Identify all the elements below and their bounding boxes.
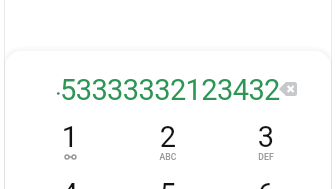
button[interactable]: 3 (217, 126, 315, 183)
button[interactable]: 5 (119, 183, 217, 189)
staticText: 6 (217, 177, 315, 189)
button[interactable]: 2 (119, 126, 217, 183)
staticText: DEF (217, 152, 315, 162)
staticText: 2 (119, 120, 217, 154)
staticText: 3 (217, 120, 315, 154)
staticText: ABC (119, 152, 217, 162)
staticText: 4 (21, 177, 119, 189)
button[interactable]: Backspace (279, 82, 297, 96)
staticText: 1 (21, 120, 119, 154)
staticText: 5 (119, 177, 217, 189)
button[interactable]: 6 (217, 183, 315, 189)
staticText: 53333332123432 (60, 73, 280, 107)
button[interactable]: 4 (21, 183, 119, 189)
button[interactable]: 1 (21, 126, 119, 183)
